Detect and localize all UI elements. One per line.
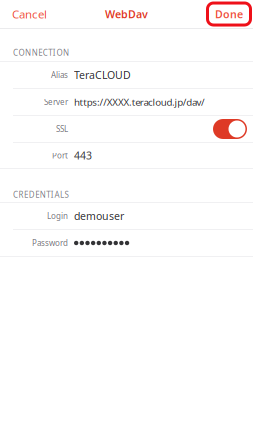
staticText: Server	[44, 97, 68, 107]
staticText: WebDav	[105, 7, 148, 21]
staticText: Cancel	[12, 6, 47, 22]
button[interactable]: Done	[209, 4, 253, 23]
staticText: TeraCLOUD	[74, 68, 131, 82]
staticText: SSL	[56, 124, 68, 134]
staticText: Done	[215, 7, 243, 21]
button[interactable]: Cancel	[0, 0, 57, 28]
staticText: demouser	[74, 209, 124, 223]
staticText: CREDENTIALS	[13, 189, 68, 200]
staticText: Password	[32, 238, 68, 248]
staticText: CONNECTION	[13, 47, 69, 58]
staticText: Port	[52, 150, 68, 161]
staticText: Alias	[51, 70, 68, 80]
staticText: https://XXXX.teracloud.jp/dav/	[74, 95, 205, 109]
button[interactable]: SSL on	[213, 119, 247, 139]
staticText: 443	[74, 148, 92, 163]
staticText: Login	[47, 211, 68, 221]
